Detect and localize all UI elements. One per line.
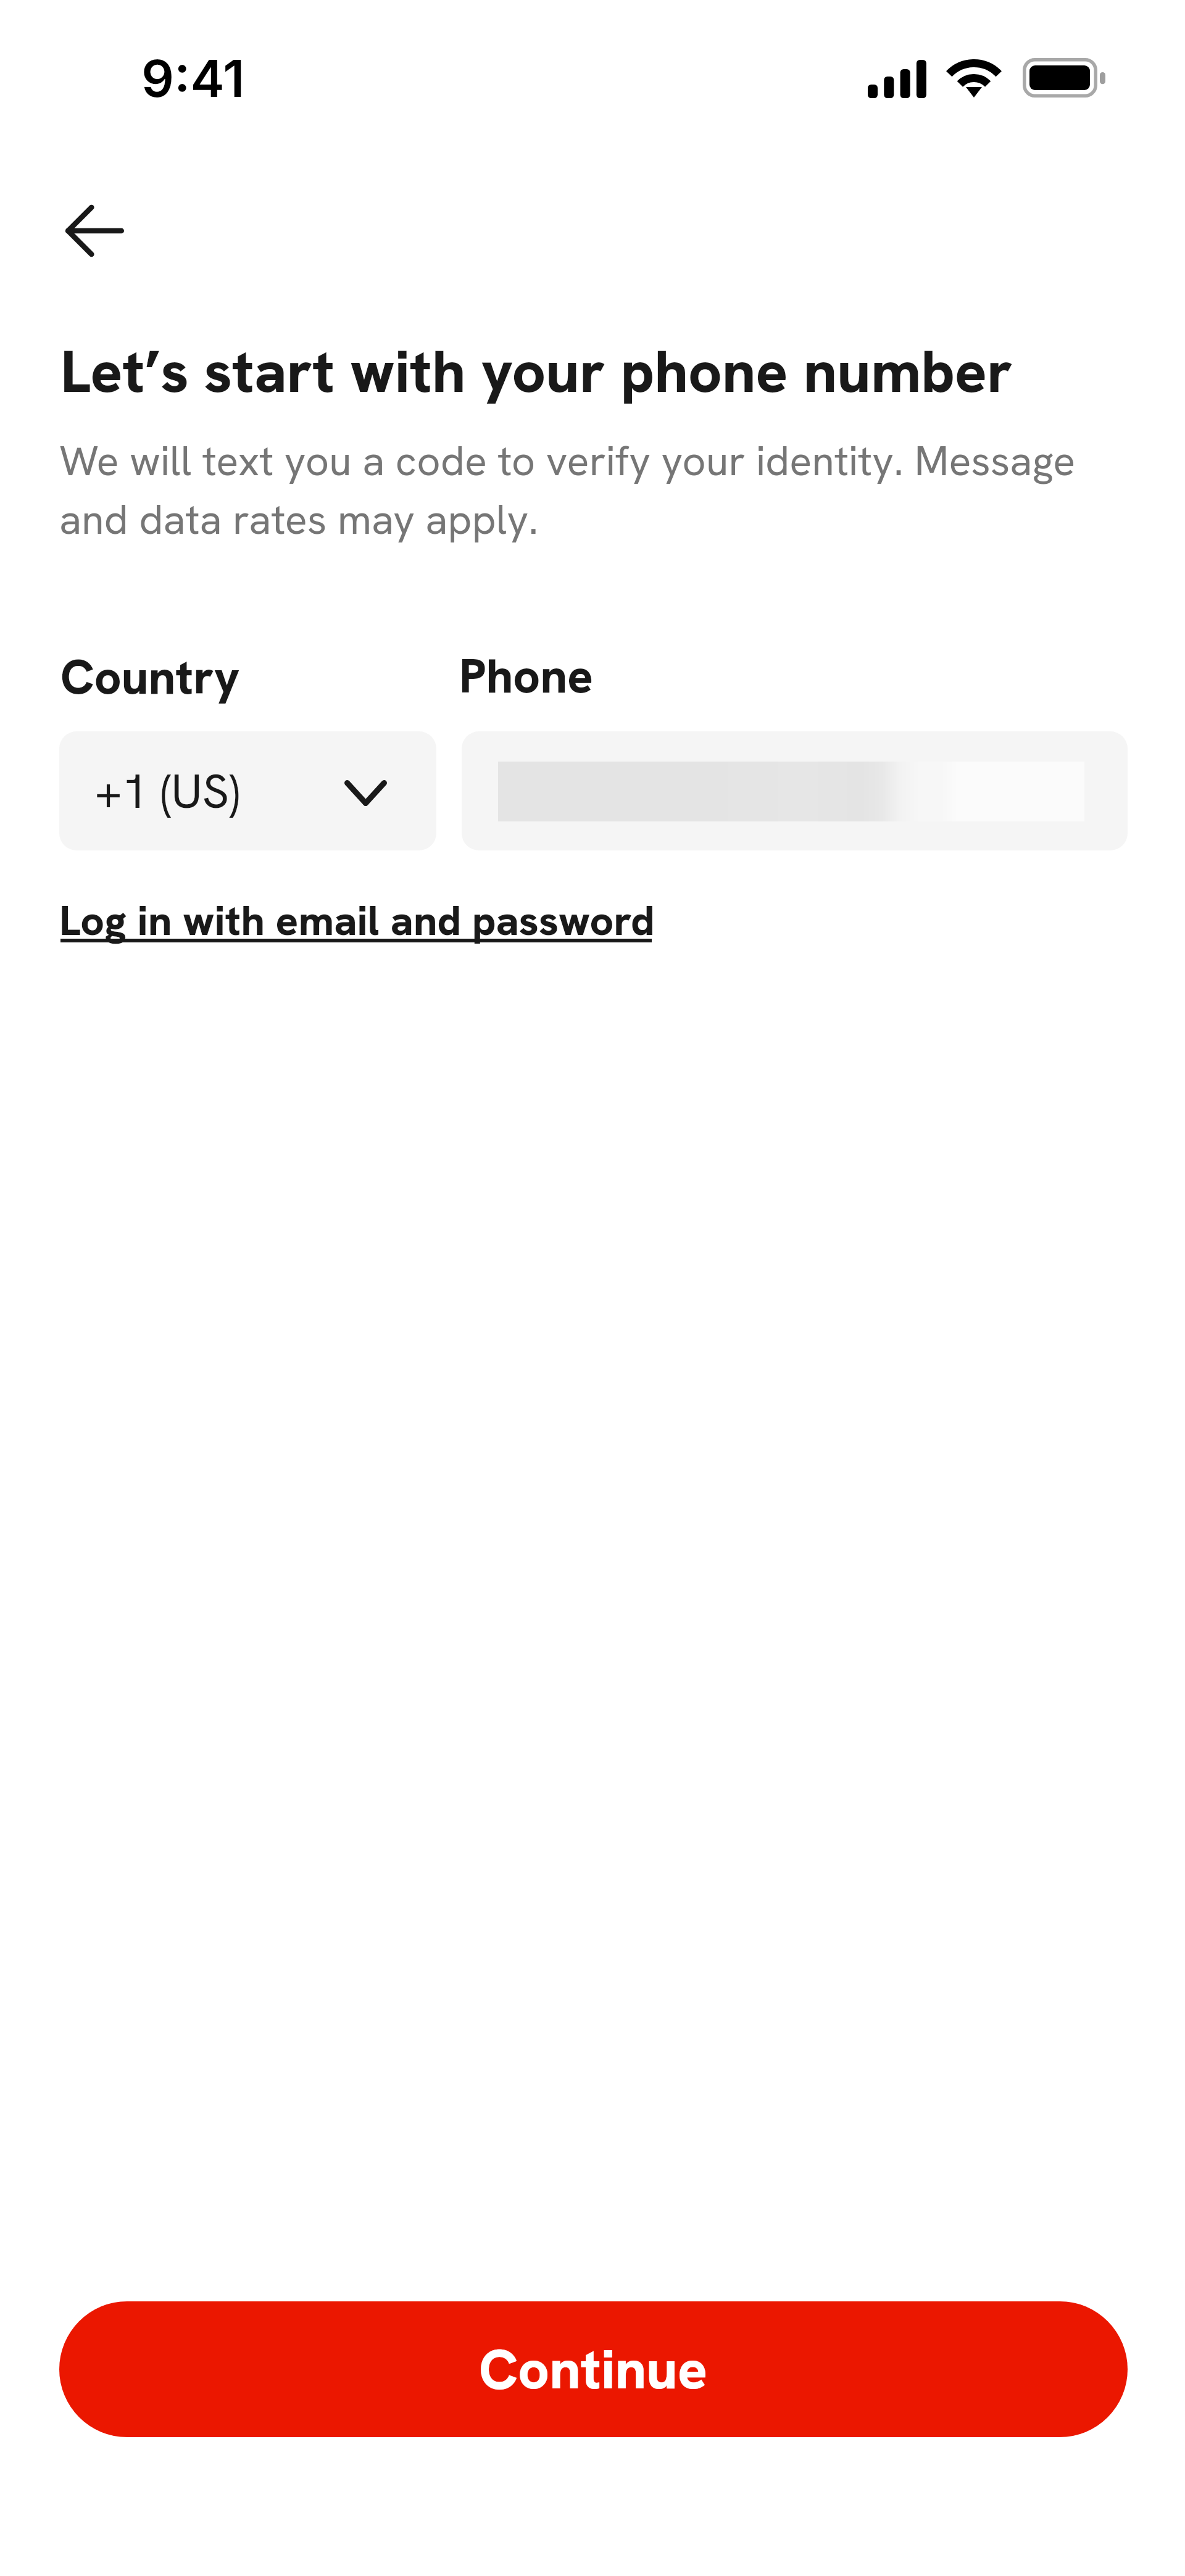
staticText: Let’s start with your phone number <box>60 333 1013 410</box>
button[interactable]: Continue <box>59 2301 1128 2437</box>
staticText: Continue <box>479 2333 708 2405</box>
staticText: We will text you a code to verify your i… <box>59 434 1133 546</box>
button[interactable]: Back <box>43 185 147 276</box>
staticText: +1 (US) <box>95 760 240 822</box>
staticText: Country <box>60 646 240 708</box>
button[interactable]: Phone number <box>462 731 1128 850</box>
button[interactable]: Log in with email and password <box>59 884 655 957</box>
button[interactable]: +1 (US) <box>59 731 436 850</box>
staticText: Phone <box>459 645 593 707</box>
staticText: Log in with email and password <box>59 893 655 948</box>
staticText: 9:41 <box>141 48 245 109</box>
